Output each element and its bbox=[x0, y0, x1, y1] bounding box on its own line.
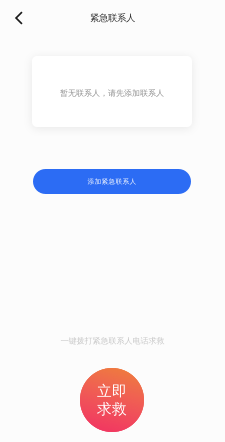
button[interactable]: 添加紧急联系人 bbox=[33, 169, 191, 194]
button[interactable]: Back bbox=[0, 3, 36, 33]
staticText: 立即 bbox=[97, 382, 127, 400]
staticText: 一键拨打紧急联系人电话求救 bbox=[60, 336, 164, 346]
button[interactable]: 立即 bbox=[80, 368, 144, 432]
staticText: 紧急联系人 bbox=[90, 12, 135, 24]
staticText: 暂无联系人，请先添加联系人 bbox=[60, 88, 164, 98]
staticText: 添加紧急联系人 bbox=[87, 177, 136, 186]
staticText: 求救 bbox=[97, 400, 127, 418]
